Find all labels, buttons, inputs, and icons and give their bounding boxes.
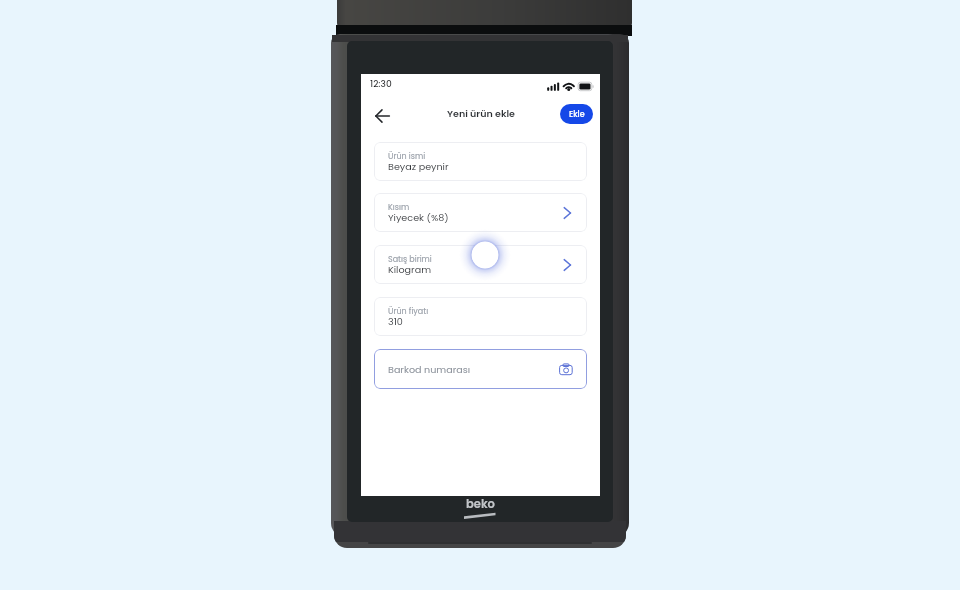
staticText: Barkod numarası — [388, 363, 471, 376]
staticText: Satış birimi — [388, 254, 432, 265]
button[interactable]: Barkod numarası — [374, 349, 587, 389]
staticText: 12:30 — [370, 78, 392, 91]
staticText: Ürün ismi — [388, 151, 426, 162]
staticText: Kilogram — [388, 263, 432, 276]
button[interactable]: Kısım — [374, 193, 587, 232]
staticText: Yeni ürün ekle — [447, 107, 515, 120]
button[interactable]: Satış birimi — [374, 245, 587, 284]
staticText: Kısım — [388, 202, 410, 213]
staticText: Ürün fiyatı — [388, 306, 429, 317]
other: Scan barcode — [559, 363, 573, 375]
button[interactable]: Ürün fiyatı — [374, 297, 587, 336]
staticText: beko — [466, 496, 495, 512]
staticText: Ekle — [569, 109, 585, 120]
staticText: Yiyecek (%8) — [388, 211, 449, 224]
staticText: Beyaz peynir — [388, 160, 449, 173]
button[interactable]: Ekle — [560, 104, 593, 124]
button[interactable]: Ürün ismi — [374, 142, 587, 181]
button[interactable]: Back — [368, 102, 396, 130]
staticText: 310 — [388, 315, 403, 328]
